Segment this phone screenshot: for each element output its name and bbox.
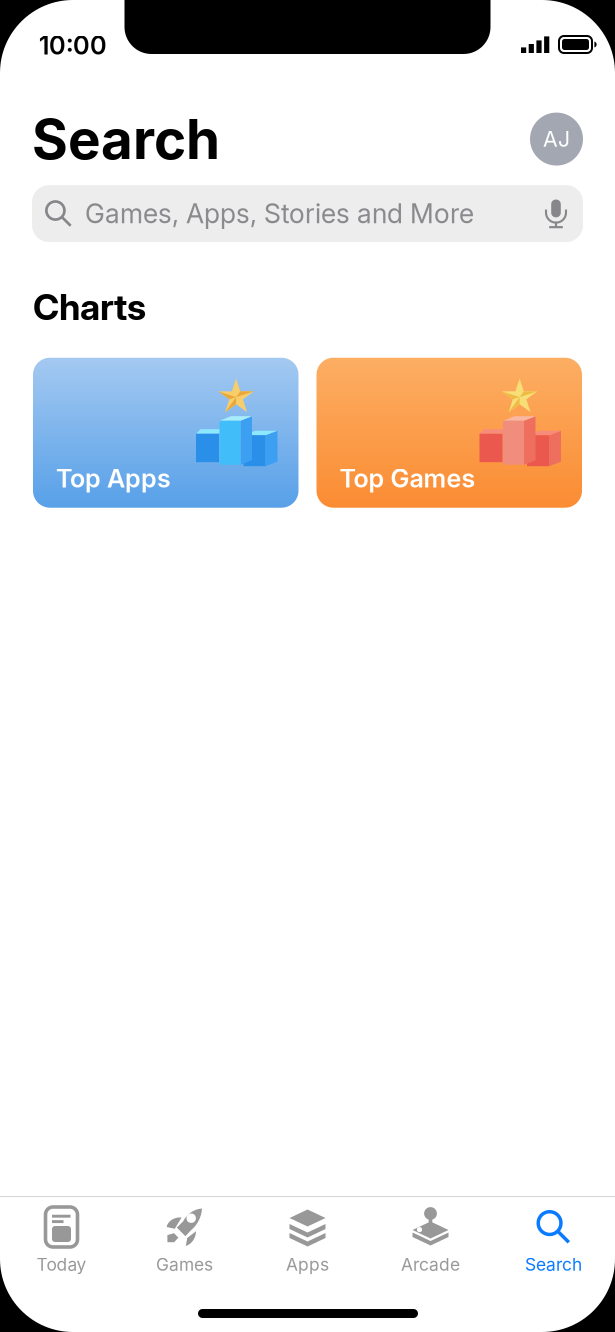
staticText: Games <box>156 1254 213 1275</box>
staticText: Arcade <box>401 1254 460 1275</box>
button[interactable]: Top Games <box>316 358 582 508</box>
staticText: Apps <box>286 1254 329 1275</box>
staticText: Games, Apps, Stories and More <box>85 197 474 230</box>
button[interactable]: Games, Apps, Stories and More <box>32 185 583 242</box>
button[interactable]: Apps <box>246 1197 369 1282</box>
staticText: 10:00 <box>39 30 107 61</box>
staticText: Top Apps <box>56 463 171 494</box>
button[interactable]: Search <box>492 1197 615 1282</box>
staticText: Top Games <box>339 463 475 494</box>
staticText: Search <box>525 1254 582 1275</box>
staticText: AJ <box>543 126 570 152</box>
staticText: Search <box>32 106 220 172</box>
button[interactable]: Arcade <box>369 1197 492 1282</box>
button[interactable]: Account <box>530 113 583 166</box>
staticText: Charts <box>33 285 146 329</box>
staticText: Today <box>36 1254 86 1275</box>
button[interactable]: Games <box>123 1197 246 1282</box>
button[interactable]: Top Apps <box>33 358 298 508</box>
button[interactable]: Today <box>0 1197 123 1282</box>
